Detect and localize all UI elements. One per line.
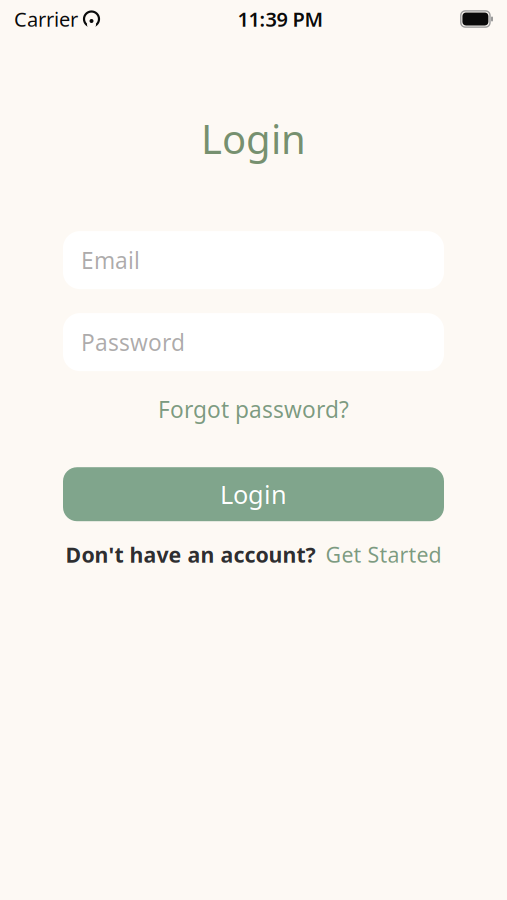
staticText: Login	[220, 477, 287, 511]
staticText: Email	[81, 245, 140, 275]
button[interactable]: Get Started	[325, 540, 441, 568]
staticText: Forgot password?	[158, 394, 349, 424]
staticText: Carrier	[14, 6, 78, 32]
button[interactable]: Forgot password?	[148, 389, 359, 429]
staticText: Login	[201, 112, 306, 165]
staticText: Password	[81, 327, 185, 357]
button[interactable]: Password	[63, 313, 444, 371]
button[interactable]: Email	[63, 231, 444, 289]
staticText: Get Started	[325, 540, 441, 568]
button[interactable]: Login	[63, 467, 444, 521]
staticText: 11:39 PM	[237, 6, 323, 32]
staticText: Don't have an account?	[65, 540, 315, 568]
